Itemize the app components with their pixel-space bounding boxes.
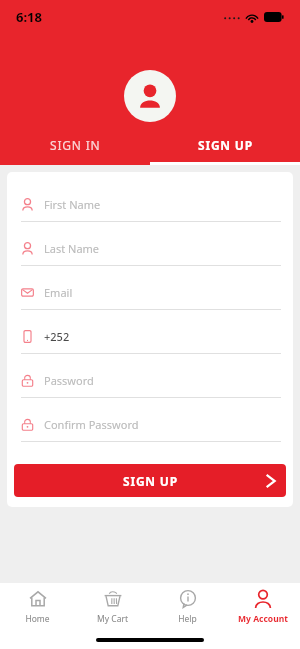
button[interactable]: Password: [7, 364, 293, 408]
staticText: SIGN UP: [123, 473, 178, 489]
staticText: Confirm Password: [44, 417, 139, 432]
button[interactable]: SIGN IN: [0, 125, 150, 165]
button[interactable]: Email: [7, 276, 293, 320]
staticText: +252: [44, 329, 70, 344]
staticText: 6:18: [16, 8, 42, 26]
button[interactable]: SIGN UP: [14, 464, 286, 497]
button[interactable]: Home: [0, 583, 75, 631]
staticText: Password: [44, 373, 94, 388]
button[interactable]: My Cart: [75, 583, 150, 631]
staticText: My Cart: [97, 613, 128, 625]
staticText: Help: [178, 613, 197, 625]
staticText: My Account: [238, 613, 288, 625]
button[interactable]: Last Name: [7, 232, 293, 276]
staticText: SIGN IN: [50, 137, 101, 153]
button[interactable]: +252: [7, 320, 293, 364]
button[interactable]: Help: [150, 583, 225, 631]
staticText: SIGN UP: [198, 137, 253, 153]
button[interactable]: First Name: [7, 188, 293, 232]
staticText: First Name: [44, 197, 101, 212]
staticText: Home: [25, 613, 50, 625]
button[interactable]: SIGN UP: [150, 125, 300, 165]
staticText: Last Name: [44, 241, 100, 256]
staticText: Email: [44, 285, 73, 300]
button[interactable]: Confirm Password: [7, 408, 293, 452]
button[interactable]: My Account: [225, 583, 300, 631]
